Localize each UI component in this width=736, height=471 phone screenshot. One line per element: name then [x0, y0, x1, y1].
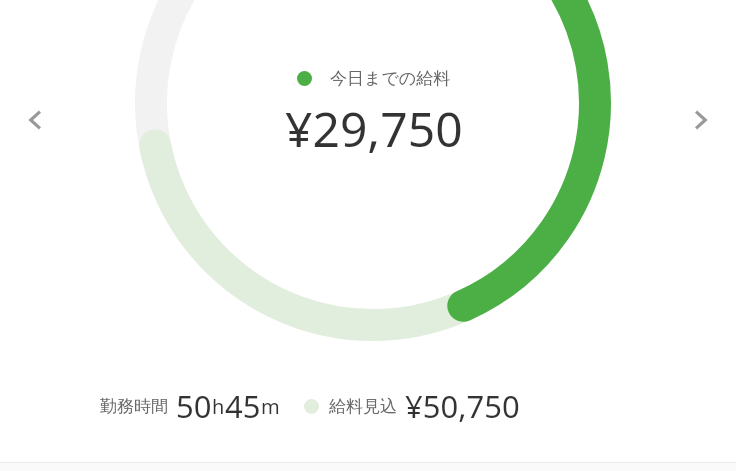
staticText: ¥29,750 — [285, 96, 463, 161]
staticText: 50 — [176, 385, 212, 427]
staticText: h — [212, 393, 225, 420]
button[interactable]: Next — [672, 92, 728, 148]
staticText: ¥50,750 — [405, 385, 520, 427]
staticText: 給料見込 — [329, 396, 397, 417]
button[interactable]: Previous — [8, 92, 64, 148]
staticText: 今日までの給料 — [330, 68, 451, 89]
staticText: m — [261, 393, 280, 420]
staticText: 45 — [225, 385, 261, 427]
staticText: 勤務時間 — [100, 396, 168, 417]
